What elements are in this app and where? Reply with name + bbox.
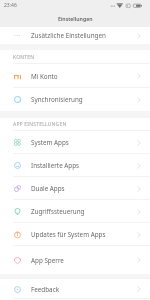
button[interactable]: Updates für System Apps — [0, 223, 150, 246]
staticText: Zusätzliche Einstellungen — [31, 31, 106, 40]
button[interactable]: System Apps — [0, 131, 150, 154]
staticText: Installierte Apps — [31, 161, 80, 170]
staticText: Zugriffssteuerung — [31, 207, 85, 216]
button[interactable]: Synchronisierung — [0, 88, 150, 111]
staticText: Einstellungen — [58, 15, 93, 22]
staticText: Duale Apps — [31, 184, 65, 193]
staticText: System Apps — [31, 138, 69, 147]
button[interactable]: Mi Konto — [0, 64, 150, 88]
button[interactable]: Zusätzliche Einstellungen — [0, 27, 150, 44]
button[interactable]: Duale Apps — [0, 177, 150, 200]
button[interactable]: Installierte Apps — [0, 154, 150, 177]
staticText: Updates für System Apps — [31, 230, 106, 239]
staticText: Synchronisierung — [31, 95, 83, 104]
button[interactable]: App Sperre — [0, 246, 150, 274]
button[interactable]: Zugriffssteuerung — [0, 200, 150, 223]
staticText: App Sperre — [31, 256, 64, 265]
button[interactable]: Feedback — [0, 279, 150, 299]
staticText: 23:46 — [4, 2, 17, 9]
staticText: KONTEN — [13, 54, 35, 61]
staticText: Feedback — [31, 285, 60, 294]
staticText: Mi Konto — [31, 72, 58, 81]
staticText: APP EINSTELLUNGEN — [13, 121, 67, 128]
